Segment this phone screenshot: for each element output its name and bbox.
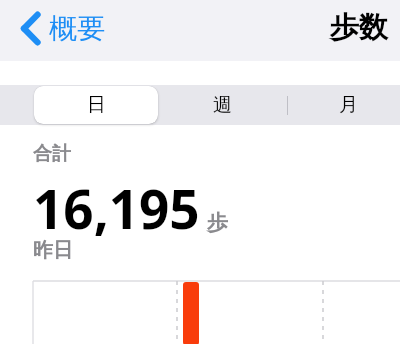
- staticText: 概要: [49, 11, 105, 46]
- staticText: 合計: [33, 142, 71, 166]
- button[interactable]: 日: [34, 86, 158, 124]
- staticText: 16,195: [33, 172, 200, 244]
- staticText: 週: [213, 93, 232, 117]
- button[interactable]: 週: [160, 86, 285, 124]
- staticText: 月: [339, 93, 358, 117]
- button[interactable]: 月: [289, 86, 400, 124]
- button[interactable]: 戻る: [16, 5, 109, 52]
- other: 戻る: [20, 12, 42, 45]
- staticText: 昨日: [33, 238, 73, 263]
- staticText: 歩: [207, 210, 228, 236]
- staticText: 日: [87, 93, 106, 117]
- staticText: 歩数: [330, 9, 388, 46]
